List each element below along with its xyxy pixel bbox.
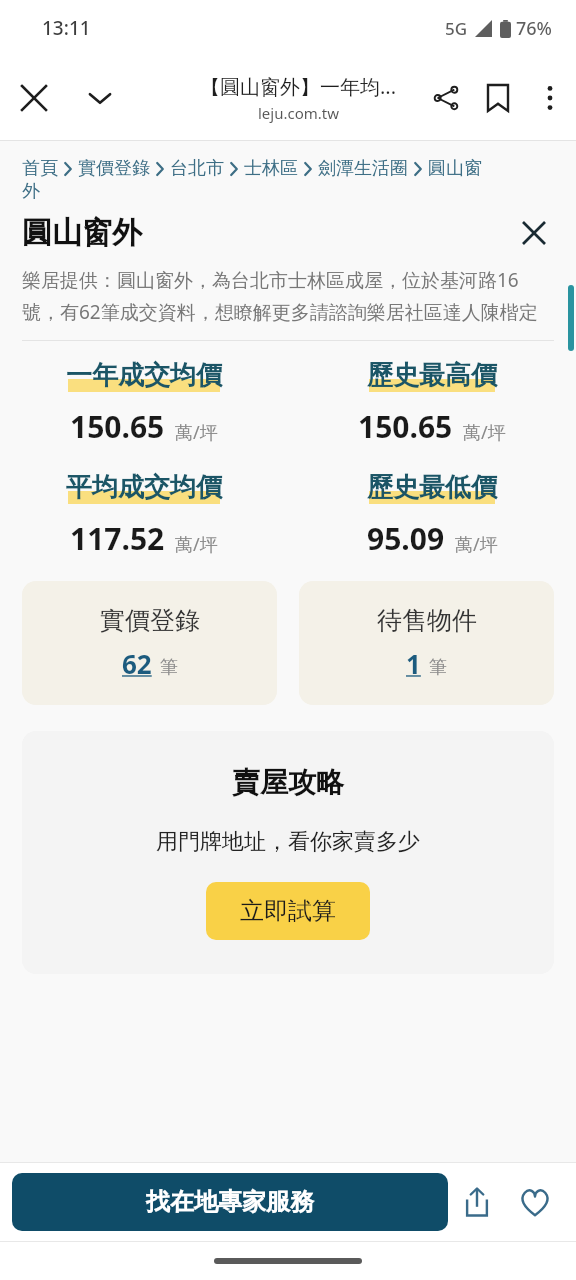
button[interactable]: 首頁: [22, 157, 58, 180]
button[interactable]: 圓山窗: [428, 157, 482, 180]
staticText: 萬/坪: [455, 532, 498, 557]
staticText: 萬/坪: [175, 420, 218, 445]
staticText: 150.65: [70, 406, 165, 447]
staticText: 95.09: [367, 518, 445, 559]
button[interactable]: Expand: [76, 74, 124, 122]
staticText: 立即試算: [240, 896, 336, 926]
button[interactable]: 實價登錄: [78, 157, 150, 180]
staticText: 13:11: [42, 15, 91, 41]
staticText: 62: [122, 646, 152, 681]
staticText: 外: [22, 180, 40, 203]
staticText: 圓山窗: [428, 157, 482, 180]
button[interactable]: 劍潭生活圈: [318, 157, 408, 180]
button[interactable]: Share: [420, 72, 472, 124]
staticText: 1: [406, 646, 421, 681]
staticText: 【圓山窗外】一年均...: [200, 73, 397, 100]
staticText: 117.52: [70, 518, 165, 559]
staticText: leju.com.tw: [258, 103, 340, 123]
staticText: 筆: [429, 656, 447, 679]
staticText: 圓山窗外: [22, 214, 142, 252]
staticText: 待售物件: [377, 605, 477, 636]
staticText: 筆: [160, 656, 178, 679]
staticText: 歷史最高價: [367, 359, 497, 392]
staticText: 150.65: [358, 406, 453, 447]
staticText: 歷史最低價: [367, 471, 497, 504]
staticText: 劍潭生活圈: [318, 157, 408, 180]
staticText: 萬/坪: [463, 420, 506, 445]
staticText: 首頁: [22, 157, 58, 180]
button[interactable]: 台北市: [170, 157, 224, 180]
staticText: 士林區: [244, 157, 298, 180]
button[interactable]: 找在地專家服務: [12, 1173, 448, 1231]
button[interactable]: 待售物件: [299, 581, 554, 705]
staticText: 用門牌地址，看你家賣多少: [156, 828, 420, 856]
staticText: 實價登錄: [100, 605, 200, 636]
button[interactable]: Close: [10, 74, 58, 122]
staticText: 賣屋攻略: [232, 765, 344, 800]
staticText: 實價登錄: [78, 157, 150, 180]
staticText: 一年成交均價: [66, 359, 222, 392]
staticText: 萬/坪: [175, 532, 218, 557]
button[interactable]: Favorite: [506, 1173, 564, 1231]
button[interactable]: Share: [448, 1173, 506, 1231]
button[interactable]: 實價登錄: [22, 581, 277, 705]
staticText: 平均成交均價: [66, 471, 222, 504]
button[interactable]: 立即試算: [206, 882, 370, 940]
staticText: 台北市: [170, 157, 224, 180]
staticText: 76%: [516, 16, 552, 41]
button[interactable]: 士林區: [244, 157, 298, 180]
staticText: 找在地專家服務: [146, 1187, 314, 1217]
button[interactable]: Bookmark: [472, 72, 524, 124]
staticText: 5G: [445, 17, 468, 40]
button[interactable]: Dismiss: [514, 213, 554, 253]
staticText: 樂居提供：圓山窗外，為台北市士林區成屋，位於基河路16號，有62筆成交資料，想瞭…: [22, 267, 546, 325]
button[interactable]: More options: [524, 72, 576, 124]
